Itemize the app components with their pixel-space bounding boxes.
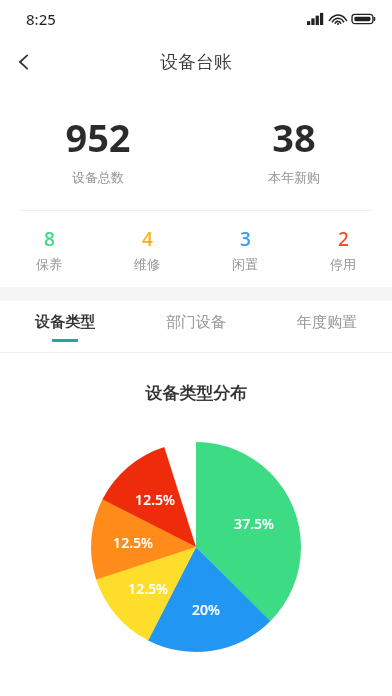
- button[interactable]: 3: [196, 211, 294, 287]
- staticText: 设备总数: [72, 169, 124, 185]
- staticText: 设备类型分布: [145, 383, 247, 404]
- staticText: 维修: [134, 256, 160, 272]
- staticText: 12.5%: [113, 533, 153, 552]
- staticText: 3: [240, 226, 251, 252]
- staticText: 闲置: [232, 256, 258, 272]
- staticText: 部门设备: [166, 313, 226, 332]
- staticText: 2: [338, 226, 349, 252]
- staticText: 设备类型: [35, 313, 95, 332]
- staticText: 12.5%: [135, 490, 175, 509]
- button[interactable]: 2: [294, 211, 392, 287]
- staticText: 4: [142, 226, 153, 252]
- staticText: 952: [65, 111, 131, 163]
- button[interactable]: 部门设备: [130, 301, 261, 353]
- staticText: 本年新购: [268, 169, 320, 185]
- button[interactable]: 设备类型: [0, 301, 130, 353]
- button[interactable]: Back: [0, 38, 48, 86]
- staticText: 38: [272, 111, 316, 163]
- button[interactable]: 年度购置: [261, 301, 392, 353]
- button[interactable]: 4: [98, 211, 196, 287]
- staticText: 8: [44, 226, 55, 252]
- staticText: 20%: [192, 600, 220, 619]
- button[interactable]: 952: [0, 86, 196, 210]
- staticText: 停用: [330, 256, 356, 272]
- button[interactable]: 8: [0, 211, 98, 287]
- staticText: 8:25: [26, 9, 56, 29]
- button[interactable]: 38: [196, 86, 392, 210]
- staticText: 设备台账: [160, 51, 232, 74]
- staticText: 12.5%: [128, 579, 168, 598]
- staticText: 保养: [36, 256, 62, 272]
- staticText: 37.5%: [234, 514, 274, 533]
- staticText: 年度购置: [297, 313, 357, 332]
